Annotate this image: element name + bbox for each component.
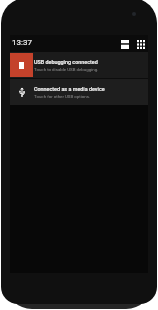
staticText: USB debugging connected — [34, 59, 98, 65]
staticText: Touch for other USB options. — [34, 94, 91, 99]
button[interactable]: Notifications — [120, 39, 130, 49]
button[interactable]: Quick settings — [136, 39, 146, 49]
staticText: 13:37 — [12, 38, 32, 47]
button[interactable]: Connected as a media device — [10, 79, 148, 105]
button[interactable]: USB debugging connected — [10, 52, 148, 78]
staticText: Touch to disable USB debugging. — [34, 67, 99, 72]
staticText: Connected as a media device — [34, 86, 105, 92]
